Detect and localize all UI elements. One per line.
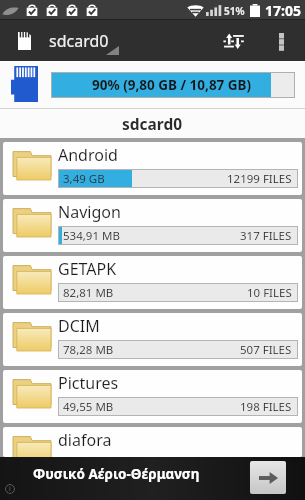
- staticText: Φυσικό Αέριο-Θέρμανση: [33, 465, 200, 483]
- staticText: GETAPK: [58, 258, 117, 280]
- staticText: sdcard0: [122, 113, 183, 134]
- staticText: 3,49 GB: [63, 171, 105, 187]
- button[interactable]: GETAPK: [3, 256, 302, 309]
- button[interactable]: Sort: [213, 20, 253, 61]
- button[interactable]: diafora: [3, 427, 302, 457]
- button[interactable]: DCIM: [3, 313, 302, 366]
- staticText: 507 FILES: [240, 342, 292, 358]
- button[interactable]: More options: [266, 20, 297, 61]
- staticText: 49,55 MB: [63, 399, 114, 415]
- staticText: 17:05: [265, 1, 301, 20]
- staticText: sdcard0: [49, 30, 109, 52]
- staticText: 90% (9,80 GB / 10,87 GB): [92, 76, 252, 94]
- staticText: Android: [58, 144, 118, 166]
- staticText: 198 FILES: [240, 399, 292, 415]
- staticText: DCIM: [58, 315, 100, 337]
- button[interactable]: Open advertisement: [250, 461, 286, 494]
- staticText: 12199 FILES: [227, 171, 292, 187]
- staticText: Pictures: [58, 372, 119, 394]
- other: Ad information: [5, 484, 15, 494]
- staticText: 534,91 MB: [63, 228, 120, 244]
- staticText: Navigon: [58, 201, 121, 223]
- staticText: diafora: [58, 429, 112, 451]
- staticText: 51%: [224, 4, 245, 18]
- staticText: i: [9, 484, 11, 494]
- staticText: 78,28 MB: [63, 342, 114, 358]
- staticText: 82,81 MB: [63, 285, 114, 301]
- staticText: 10 FILES: [247, 285, 292, 301]
- button[interactable]: Android: [3, 142, 302, 195]
- staticText: 317 FILES: [240, 228, 292, 244]
- button[interactable]: Navigon: [3, 199, 302, 252]
- button[interactable]: Pictures: [3, 370, 302, 423]
- button[interactable]: Φυσικό Αέριο-Θέρμανση: [0, 457, 305, 500]
